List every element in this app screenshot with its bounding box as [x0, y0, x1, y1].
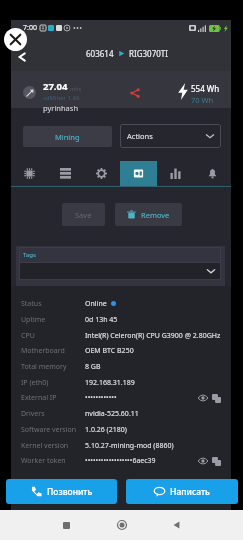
button[interactable]: Back — [169, 517, 185, 533]
button[interactable]: Close — [4, 28, 27, 51]
staticText: External IP — [21, 393, 85, 403]
button[interactable]: Alerts — [194, 161, 231, 186]
staticText: Worker token — [21, 456, 85, 466]
button[interactable]: Stats — [157, 161, 194, 186]
staticText: Drivers — [21, 409, 85, 419]
staticText: 192.168.31.189 — [85, 378, 135, 388]
button[interactable]: Back — [14, 49, 30, 65]
button[interactable]: Позвонить — [6, 479, 117, 504]
button[interactable]: Remove — [115, 203, 182, 226]
button[interactable]: Motherboard — [11, 343, 231, 358]
button[interactable]: CPU — [11, 328, 231, 343]
staticText: Написать — [170, 486, 210, 498]
button[interactable]: Settings — [83, 161, 120, 186]
staticText: Intel(R) Celeron(R) CPU G3900 @ 2.80GHz — [85, 331, 221, 341]
staticText: 554 Wh — [191, 83, 220, 94]
staticText: mhs — [70, 85, 82, 92]
button[interactable]: Show value — [197, 455, 209, 467]
staticText: Tags — [23, 251, 36, 259]
staticText: 27.04 — [43, 80, 68, 93]
button[interactable]: Status — [11, 296, 231, 311]
staticText: 5.10.27-mining-mod (8860) — [85, 441, 174, 451]
button[interactable]: IP (eth0) — [11, 375, 231, 390]
staticText: Kernel version — [21, 441, 85, 451]
staticText: Status — [21, 299, 85, 309]
button[interactable]: Home — [114, 517, 130, 533]
staticText: pyrinhash — [43, 103, 79, 113]
button[interactable]: Recent apps — [58, 517, 74, 533]
staticText: Save — [75, 210, 92, 220]
button[interactable]: Copy — [210, 392, 222, 404]
button[interactable]: Actions — [120, 124, 221, 148]
button[interactable]: Kernel version — [11, 438, 231, 453]
button[interactable]: Overview — [11, 161, 47, 186]
button[interactable]: Написать — [126, 479, 238, 504]
button[interactable] — [19, 262, 221, 280]
staticText: IP (eth0) — [21, 378, 85, 388]
staticText: Online — [85, 299, 107, 309]
staticText: Total memory — [21, 362, 85, 372]
staticText: 70 Wh — [191, 95, 214, 105]
button[interactable]: Share — [128, 86, 142, 100]
staticText: OEM BTC B250 — [85, 346, 134, 356]
staticText: Motherboard — [21, 346, 85, 356]
staticText: 7:00 — [23, 23, 37, 33]
staticText: Uptime — [21, 315, 85, 325]
staticText: sdMiner 1.86 — [43, 94, 80, 102]
button[interactable]: GPUs — [120, 161, 157, 186]
staticText: ••••••••••••••••••6aec39 — [85, 456, 156, 466]
staticText: Mining — [55, 132, 80, 142]
button[interactable]: Uptime — [11, 312, 231, 327]
staticText: Remove — [141, 210, 170, 220]
staticText: CPU — [21, 331, 85, 341]
staticText: 1.0.26 (2180) — [85, 425, 127, 435]
staticText: nvidia-525.60.11 — [85, 409, 139, 419]
button[interactable]: Rigs — [47, 161, 83, 186]
staticText: Software version — [21, 425, 85, 435]
button[interactable]: Copy — [210, 455, 222, 467]
button[interactable]: Save — [62, 203, 105, 226]
button[interactable]: Software version — [11, 422, 231, 437]
button[interactable]: Mining — [23, 126, 112, 147]
button[interactable]: External IP — [11, 390, 231, 405]
staticText: Позвонить — [47, 486, 93, 498]
staticText: 0d 13h 45 — [85, 315, 118, 325]
staticText: 603614 — [86, 48, 114, 59]
staticText: RIG3070TI — [129, 48, 168, 59]
button[interactable]: Show value — [197, 392, 209, 404]
button[interactable]: Total memory — [11, 359, 231, 374]
staticText: 8 GB — [85, 362, 101, 372]
staticText: •••••••••••• — [85, 393, 117, 403]
button[interactable]: Drivers — [11, 406, 231, 421]
button[interactable]: Worker token — [11, 453, 231, 468]
staticText: Actions — [127, 131, 153, 141]
